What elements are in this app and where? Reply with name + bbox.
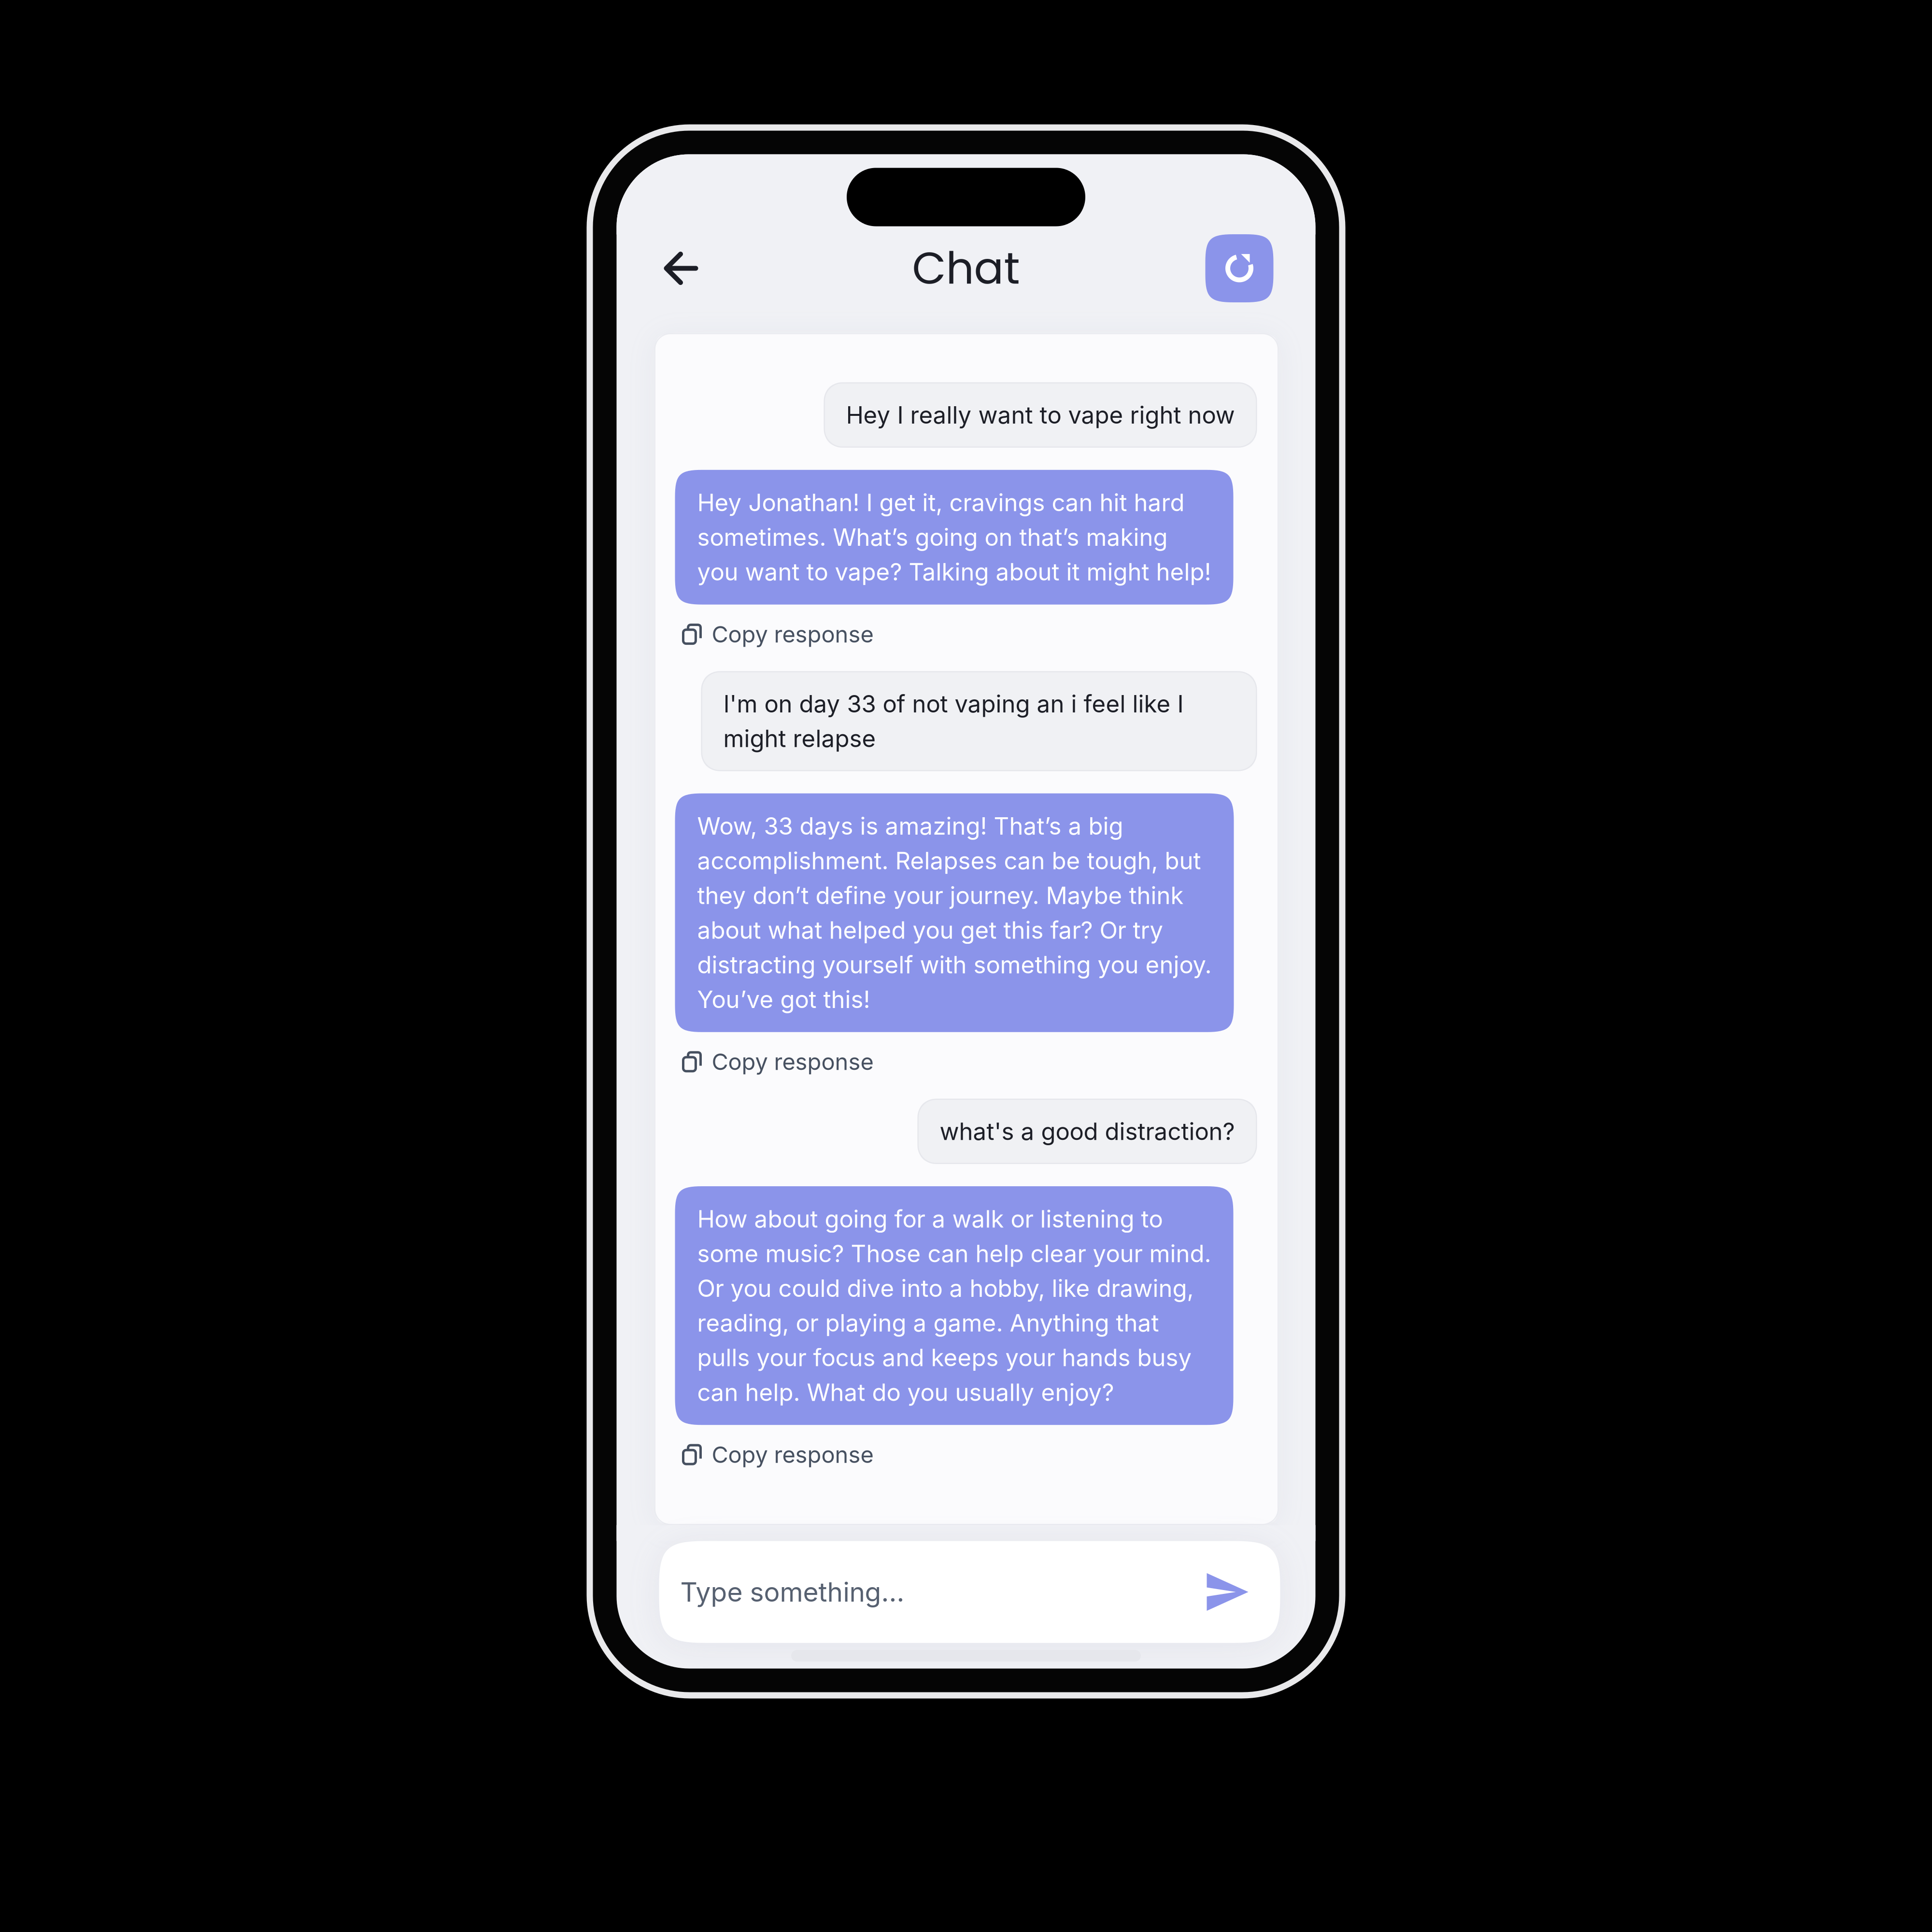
button[interactable]: Back — [617, 237, 715, 300]
button[interactable]: Copy response — [675, 1032, 1257, 1076]
staticText: Wow, 33 days is amazing! That’s a big ac… — [697, 812, 1212, 1014]
button[interactable]: Copy response — [675, 605, 1257, 649]
button[interactable]: Send — [1194, 1561, 1252, 1623]
staticText: Hey I really want to vape right now — [846, 401, 1235, 429]
staticText: I'm on day 33 of not vaping an i feel li… — [723, 689, 1184, 753]
button[interactable]: Copy response — [675, 1425, 1257, 1469]
staticText: Hey Jonathan! I get it, cravings can hit… — [697, 488, 1211, 586]
staticText: Copy response — [712, 1048, 874, 1075]
staticText: what's a good distraction? — [940, 1117, 1235, 1146]
staticText: Type something... — [680, 1576, 904, 1608]
button[interactable]: Refresh — [1205, 234, 1273, 302]
staticText: How about going for a walk or listening … — [697, 1205, 1211, 1407]
staticText: Copy response — [712, 621, 874, 648]
staticText: Chat — [912, 238, 1020, 299]
staticText: Copy response — [712, 1441, 874, 1468]
